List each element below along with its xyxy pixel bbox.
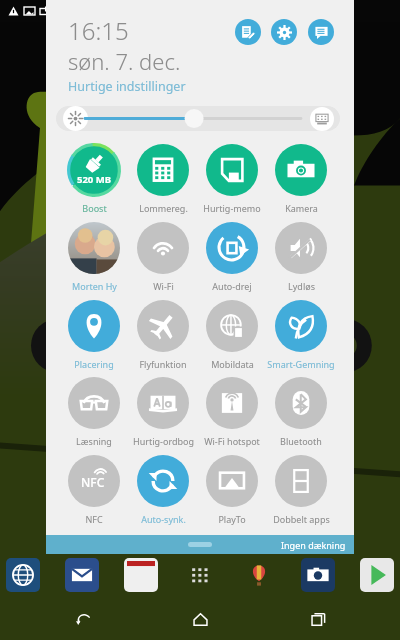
staticText: NFC (81, 474, 105, 490)
button[interactable]: Email (65, 558, 99, 592)
button[interactable]: Dobbelt apps (267, 455, 335, 525)
staticText: Auto-drej (212, 280, 252, 292)
staticText: Bluetooth (280, 435, 322, 447)
staticText: Lydløs (288, 280, 315, 292)
button[interactable]: Weather (242, 558, 276, 592)
staticText: Mobildata (211, 358, 254, 370)
button[interactable]: Home (165, 598, 235, 640)
staticText: Flyfunktion (139, 358, 187, 370)
button[interactable]: Bluetooth (267, 377, 335, 447)
button[interactable]: Auto-drej (198, 222, 266, 292)
button[interactable]: Placering (60, 300, 128, 370)
staticText: Lommereg. (139, 202, 188, 214)
button[interactable]: Auto-synk. (129, 455, 197, 525)
staticText: Wi-Fi hotspot (204, 435, 260, 447)
button[interactable]: Smart-Gemning (267, 300, 335, 370)
button[interactable]: PlayTo (198, 455, 266, 525)
button[interactable]: Settings (271, 19, 297, 45)
button[interactable]: Recent apps (283, 598, 353, 640)
button[interactable]: Hurtig-memo (198, 144, 266, 214)
button[interactable]: All apps (183, 558, 217, 592)
staticText: Auto-synk. (141, 513, 186, 525)
button[interactable]: NFC (60, 455, 128, 525)
button[interactable]: Play Store (360, 558, 394, 592)
button[interactable]: Lommereg. (129, 144, 197, 214)
button[interactable]: Wi-Fi hotspot (198, 377, 266, 447)
button[interactable]: Calendar (124, 558, 158, 592)
button[interactable]: 520 MB (60, 144, 128, 214)
staticText: 16:15 (68, 14, 129, 47)
staticText: Kamera (285, 202, 318, 214)
button[interactable]: Lydløs (267, 222, 335, 292)
button[interactable]: Wi-Fi (129, 222, 197, 292)
button[interactable]: Hurtige indstillinger (68, 78, 186, 95)
button[interactable]: Auto brightness (310, 107, 334, 131)
staticText: Hurtig-ordbog (133, 435, 194, 447)
button[interactable]: Hurtig-ordbog (129, 377, 197, 447)
staticText: NFC (85, 513, 103, 525)
button[interactable]: Flyfunktion (129, 300, 197, 370)
staticText: Læsning (76, 435, 112, 447)
button[interactable]: Browser (6, 558, 40, 592)
button[interactable]: Edit quick settings (235, 19, 261, 45)
button[interactable]: Kamera (267, 144, 335, 214)
staticText: Ingen dækning (281, 539, 346, 551)
staticText: Placering (74, 358, 114, 370)
staticText: søn. 7. dec. (68, 46, 181, 76)
staticText: Morten Hy (72, 280, 117, 292)
button[interactable]: Læsning (60, 377, 128, 447)
staticText: Smart-Gemning (267, 358, 335, 370)
staticText: PlayTo (218, 513, 246, 525)
staticText: 520 MB (77, 173, 112, 186)
button[interactable]: Mobildata (198, 300, 266, 370)
staticText: Hurtig-memo (203, 202, 261, 214)
staticText: Dobbelt apps (273, 513, 330, 525)
button[interactable]: Camera (301, 558, 335, 592)
staticText: Wi-Fi (153, 280, 174, 292)
staticText: Boost (82, 202, 107, 214)
button[interactable]: Morten Hy (60, 222, 128, 292)
button[interactable]: Back (48, 598, 118, 640)
button[interactable]: Ingen dækning (46, 535, 354, 554)
button[interactable]: Brightness (63, 106, 88, 131)
button[interactable]: Notifications (308, 19, 334, 45)
